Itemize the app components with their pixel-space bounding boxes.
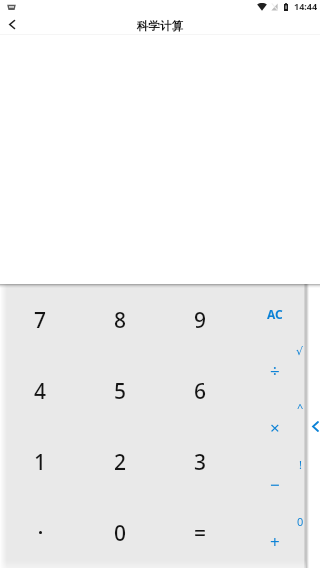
staticText: ! — [299, 457, 302, 472]
button[interactable]: 2 — [80, 426, 160, 497]
staticText: 3 — [194, 448, 207, 477]
button[interactable]: 9 — [160, 284, 240, 355]
staticText: 0 — [114, 519, 127, 548]
staticText: AC — [267, 306, 283, 322]
button[interactable]: Decimal point — [0, 497, 80, 568]
staticText: 5 — [114, 377, 127, 406]
button[interactable]: AC — [241, 286, 309, 342]
button[interactable]: ÷ — [241, 342, 309, 399]
button[interactable]: 0 — [80, 497, 160, 568]
staticText: 1 — [34, 448, 47, 477]
staticText: 0 — [297, 514, 304, 529]
staticText: × — [270, 416, 280, 439]
button[interactable]: 1 — [0, 426, 80, 497]
button[interactable]: 5 — [80, 355, 160, 426]
button[interactable]: 7 — [0, 284, 80, 355]
staticText: − — [270, 473, 280, 496]
staticText: = — [194, 519, 207, 548]
staticText: ^ — [297, 400, 304, 415]
staticText: 6 — [194, 377, 207, 406]
button[interactable]: + — [241, 513, 309, 568]
staticText: 8 — [114, 306, 127, 335]
button[interactable]: 8 — [80, 284, 160, 355]
staticText: + — [270, 530, 280, 553]
staticText: 14:44 — [294, 0, 318, 12]
button[interactable]: − — [241, 456, 309, 513]
staticText: 科学计算 — [137, 19, 183, 33]
button[interactable]: √ — [289, 323, 311, 379]
staticText: √ — [296, 345, 304, 358]
button[interactable]: Expand panel — [308, 413, 320, 439]
button[interactable]: × — [241, 399, 309, 456]
button[interactable]: ^ — [289, 379, 311, 436]
button[interactable]: 3 — [160, 426, 240, 497]
staticText: ÷ — [270, 359, 280, 382]
button[interactable]: 6 — [160, 355, 240, 426]
button[interactable]: 0 — [289, 493, 311, 550]
staticText: 9 — [194, 306, 207, 335]
button[interactable]: 4 — [0, 355, 80, 426]
button[interactable]: ! — [289, 436, 311, 493]
button[interactable]: = — [160, 497, 240, 568]
staticText: 2 — [114, 448, 127, 477]
staticText: 7 — [34, 306, 47, 335]
staticText: 4 — [34, 377, 47, 406]
button[interactable]: Back — [0, 16, 24, 35]
